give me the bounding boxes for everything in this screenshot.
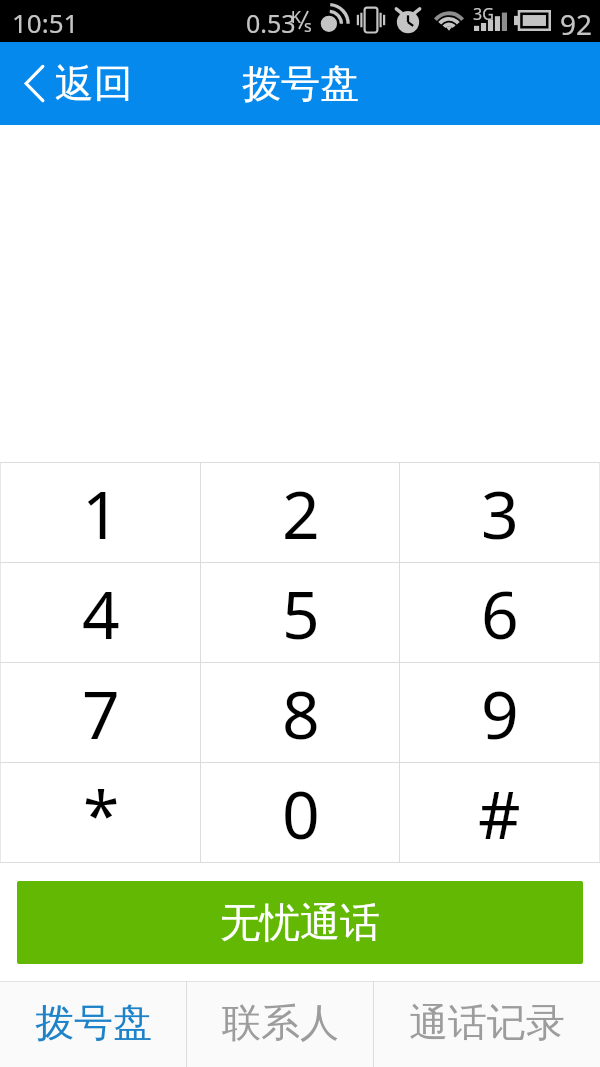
staticText: 5	[282, 568, 320, 658]
staticText: 无忧通话	[220, 897, 380, 947]
staticText: 返回	[55, 59, 133, 108]
staticText: s	[304, 15, 312, 37]
staticText: K	[291, 6, 301, 28]
button[interactable]: 通话记录	[374, 982, 600, 1067]
button[interactable]: 无忧通话	[17, 881, 583, 964]
button[interactable]: 4	[1, 563, 201, 662]
staticText: 0	[282, 768, 320, 858]
staticText: 3	[481, 468, 519, 558]
staticText: 7	[82, 668, 120, 758]
staticText: 0.53	[246, 6, 296, 40]
staticText: 通话记录	[409, 998, 565, 1047]
staticText: 6	[481, 568, 519, 658]
staticText: 1	[82, 468, 120, 558]
button[interactable]: 2	[201, 463, 400, 562]
staticText: 3G	[473, 3, 494, 25]
button[interactable]: 联系人	[187, 982, 373, 1067]
staticText: 92	[560, 5, 593, 43]
staticText: 9	[481, 668, 519, 758]
other: Back	[25, 65, 44, 102]
button[interactable]: 0	[201, 763, 400, 862]
staticText: 10:51	[12, 5, 79, 40]
staticText: 2	[282, 468, 320, 558]
button[interactable]: 8	[201, 663, 400, 762]
button[interactable]: #	[400, 763, 599, 862]
staticText: 联系人	[222, 998, 339, 1047]
button[interactable]: 9	[400, 663, 599, 762]
button[interactable]: 拨号盘	[0, 982, 186, 1067]
button[interactable]: 5	[201, 563, 400, 662]
button[interactable]: 7	[1, 663, 201, 762]
button[interactable]: *	[1, 763, 201, 862]
button[interactable]: 6	[400, 563, 599, 662]
staticText: 拨号盘	[35, 998, 152, 1047]
staticText: *	[83, 768, 120, 858]
staticText: #	[478, 768, 521, 858]
staticText: 4	[82, 568, 120, 658]
staticText: 8	[282, 668, 320, 758]
button[interactable]: Back	[0, 49, 153, 118]
button[interactable]: 3	[400, 463, 599, 562]
staticText: 拨号盘	[242, 59, 359, 108]
button[interactable]: 1	[1, 463, 201, 562]
